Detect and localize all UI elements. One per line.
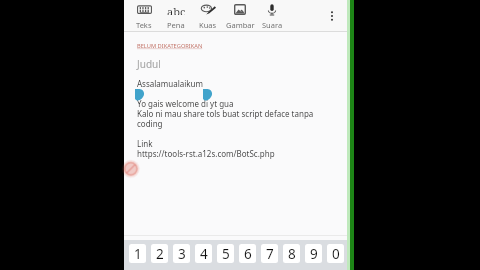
button[interactable]: More options	[321, 5, 343, 27]
button[interactable]: 2	[151, 244, 168, 263]
staticText: 1	[134, 245, 142, 263]
staticText: Assalamualaikum	[137, 78, 204, 89]
staticText: 0	[332, 245, 340, 263]
button[interactable]: 8	[283, 244, 300, 263]
button[interactable]: Suara	[256, 0, 288, 30]
staticText: Gambar	[226, 20, 255, 30]
button[interactable]: Gambar	[224, 0, 256, 30]
staticText: 6	[244, 245, 252, 263]
button[interactable]: 7	[261, 244, 278, 263]
staticText: Yo gais welcome di yt gua Kalo ni mau sh…	[137, 98, 314, 129]
button[interactable]: 1	[129, 244, 146, 263]
staticText: Judul	[137, 57, 161, 71]
staticText: 8	[288, 245, 296, 263]
button[interactable]: Kuas	[192, 0, 224, 30]
button[interactable]: 9	[305, 244, 322, 263]
staticText: Teks	[136, 20, 152, 30]
button[interactable]: BELUM DIKATEGORIKAN	[137, 42, 203, 50]
staticText: Kuas	[199, 20, 217, 30]
button[interactable]: 4	[195, 244, 212, 263]
staticText: 4	[200, 245, 208, 263]
staticText: abc	[167, 4, 186, 15]
staticText: 9	[310, 245, 318, 263]
button[interactable]: 6	[239, 244, 256, 263]
staticText: Pena	[167, 20, 185, 30]
button[interactable]: 0	[327, 244, 344, 263]
staticText: 7	[266, 245, 274, 263]
button[interactable]: 5	[217, 244, 234, 263]
staticText: 2	[156, 245, 164, 263]
staticText: Suara	[262, 20, 283, 30]
button[interactable]: Teks	[128, 0, 160, 30]
staticText: Link https://tools-rst.a12s.com/BotSc.ph…	[137, 138, 275, 159]
button[interactable]: abc	[160, 0, 192, 30]
staticText: BELUM DIKATEGORIKAN	[137, 42, 203, 50]
staticText: 3	[178, 245, 186, 263]
staticText: 5	[222, 245, 230, 263]
button[interactable]: 3	[173, 244, 190, 263]
